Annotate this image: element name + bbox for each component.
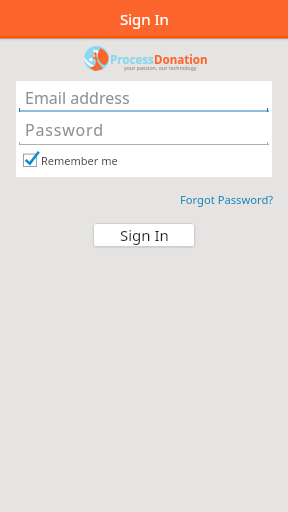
button[interactable]: Sign In xyxy=(93,223,195,247)
staticText: Email address xyxy=(25,87,130,109)
button[interactable]: Forgot Password? xyxy=(179,190,275,208)
staticText: your passion, our technology xyxy=(124,64,197,71)
staticText: Process xyxy=(110,52,154,68)
staticText: Sign In xyxy=(120,225,169,245)
button[interactable]: Remember me xyxy=(18,145,138,171)
button[interactable]: Email address xyxy=(25,86,261,110)
staticText: Donation xyxy=(154,52,208,68)
staticText: Remember me xyxy=(41,153,118,168)
button[interactable]: Password xyxy=(25,118,261,142)
staticText: Forgot Password? xyxy=(180,192,274,207)
staticText: Password xyxy=(25,119,104,141)
staticText: Sign In xyxy=(120,9,169,29)
